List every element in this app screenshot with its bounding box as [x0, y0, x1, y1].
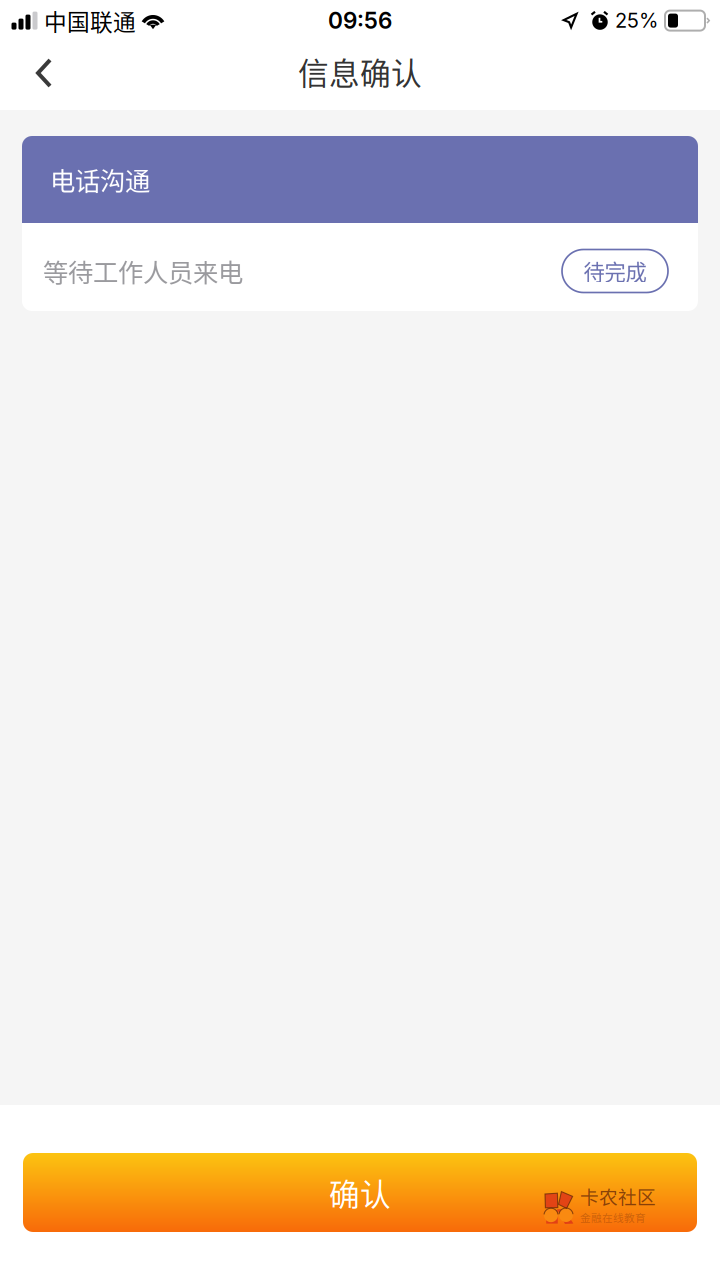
staticText: 25% [615, 8, 658, 33]
staticText: 等待工作人员来电 [43, 253, 243, 289]
staticText: 卡农社区 [580, 1182, 656, 1209]
button[interactable]: Back [0, 44, 74, 110]
staticText: 09:56 [328, 7, 392, 34]
staticText: 中国联通 [44, 4, 136, 37]
staticText: 金融在线教育 [580, 1210, 646, 1225]
button[interactable]: 待完成 [562, 249, 668, 292]
staticText: 信息确认 [298, 49, 422, 94]
button[interactable]: 确认 [23, 1153, 697, 1232]
staticText: 电话沟通 [50, 161, 150, 198]
staticText: 待完成 [583, 256, 646, 286]
staticText: 确认 [329, 1170, 391, 1215]
